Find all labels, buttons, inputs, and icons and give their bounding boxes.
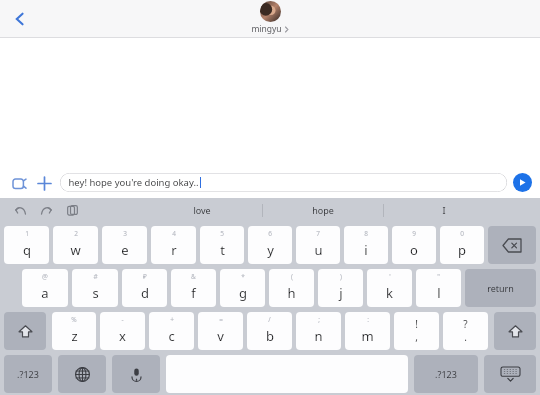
button[interactable]: .?123 — [4, 355, 52, 393]
staticText: mingyu — [251, 23, 282, 35]
staticText: love — [193, 204, 211, 216]
staticText: @ — [42, 272, 48, 281]
staticText: 5 — [220, 229, 224, 238]
staticText: % — [71, 315, 77, 324]
button[interactable]: ! — [394, 312, 439, 350]
staticText: 0 — [460, 229, 464, 238]
staticText: t — [220, 241, 225, 259]
button[interactable]: @ — [22, 269, 68, 307]
staticText: , — [415, 330, 418, 344]
button[interactable]: ; — [296, 312, 341, 350]
button[interactable]: - — [100, 312, 145, 350]
staticText: / — [268, 315, 271, 324]
button[interactable]: # — [72, 269, 118, 307]
staticText: j — [339, 284, 343, 302]
button[interactable]: Change keyboard language — [58, 355, 106, 393]
staticText: - — [121, 315, 124, 324]
button[interactable]: love — [142, 198, 262, 222]
button[interactable]: % — [52, 312, 96, 350]
button[interactable]: return — [465, 269, 536, 307]
staticText: v — [217, 327, 224, 345]
button[interactable]: 9 — [392, 226, 436, 264]
button[interactable]: ' — [367, 269, 412, 307]
button[interactable]: / — [247, 312, 292, 350]
staticText: ! — [415, 317, 418, 331]
button[interactable]: ( — [269, 269, 314, 307]
staticText: ' — [389, 272, 391, 281]
staticText: p — [458, 241, 466, 259]
staticText: ) — [340, 272, 342, 281]
button[interactable]: " — [416, 269, 461, 307]
staticText: .?123 — [435, 368, 457, 380]
staticText: ; — [318, 315, 320, 324]
button[interactable]: & — [171, 269, 216, 307]
staticText: d — [141, 284, 149, 302]
staticText: 7 — [316, 229, 320, 238]
button[interactable]: Hide keyboard — [484, 355, 536, 393]
button[interactable]: I — [384, 198, 504, 222]
staticText: 4 — [172, 229, 176, 238]
staticText: z — [71, 327, 78, 345]
staticText: c — [168, 327, 175, 345]
button[interactable]: Camera — [8, 172, 30, 194]
staticText: f — [191, 284, 196, 302]
button[interactable]: 0 — [440, 226, 484, 264]
button[interactable]: Backspace — [488, 226, 536, 264]
staticText: n — [314, 327, 323, 345]
staticText: 2 — [74, 229, 78, 238]
staticText: k — [386, 284, 393, 302]
button[interactable]: hope — [263, 198, 383, 222]
staticText: .?123 — [17, 368, 39, 380]
button[interactable]: Redo — [36, 200, 56, 220]
staticText: i — [364, 241, 368, 259]
button[interactable]: ? — [443, 312, 488, 350]
button[interactable]: 8 — [344, 226, 388, 264]
staticText: & — [191, 272, 196, 281]
staticText: e — [121, 241, 129, 259]
button[interactable]: : — [345, 312, 390, 350]
button[interactable]: Paste — [62, 200, 82, 220]
button[interactable]: ₽ — [122, 269, 167, 307]
staticText: # — [93, 272, 98, 281]
button[interactable]: 7 — [296, 226, 340, 264]
staticText: m — [361, 327, 374, 345]
staticText: * — [241, 272, 245, 281]
button[interactable]: 1 — [4, 226, 49, 264]
button[interactable]: Back — [4, 3, 36, 35]
button[interactable]: Undo — [10, 200, 30, 220]
staticText: ₽ — [143, 272, 147, 281]
button[interactable]: * — [220, 269, 265, 307]
staticText: 8 — [364, 229, 368, 238]
staticText: g — [239, 284, 247, 302]
staticText: ? — [463, 317, 468, 331]
staticText: 9 — [412, 229, 416, 238]
staticText: 3 — [123, 229, 127, 238]
staticText: r — [171, 241, 177, 259]
button[interactable]: Shift — [494, 312, 536, 350]
button[interactable]: .?123 — [414, 355, 478, 393]
staticText: ( — [291, 272, 293, 281]
button[interactable]: Send — [513, 173, 532, 192]
button[interactable]: 3 — [102, 226, 147, 264]
button[interactable]: 6 — [248, 226, 292, 264]
button[interactable]: hey! hope you're doing okay.. — [60, 173, 507, 192]
button[interactable]: 5 — [200, 226, 244, 264]
button[interactable]: Voice input — [112, 355, 160, 393]
staticText: + — [170, 315, 174, 324]
button[interactable]: Add attachment — [33, 172, 55, 194]
staticText: return — [487, 282, 514, 294]
staticText: q — [23, 241, 31, 259]
button[interactable]: ) — [318, 269, 363, 307]
staticText: l — [437, 284, 441, 302]
staticText: u — [314, 241, 323, 259]
button[interactable]: + — [149, 312, 194, 350]
staticText: y — [267, 241, 274, 259]
button[interactable]: Shift — [4, 312, 46, 350]
button[interactable]: = — [198, 312, 243, 350]
staticText: hey! hope you're doing okay.. — [68, 176, 199, 189]
staticText: o — [410, 241, 418, 259]
button[interactable]: 2 — [53, 226, 98, 264]
button[interactable]: 4 — [151, 226, 196, 264]
button[interactable]: mingyu — [251, 1, 289, 35]
